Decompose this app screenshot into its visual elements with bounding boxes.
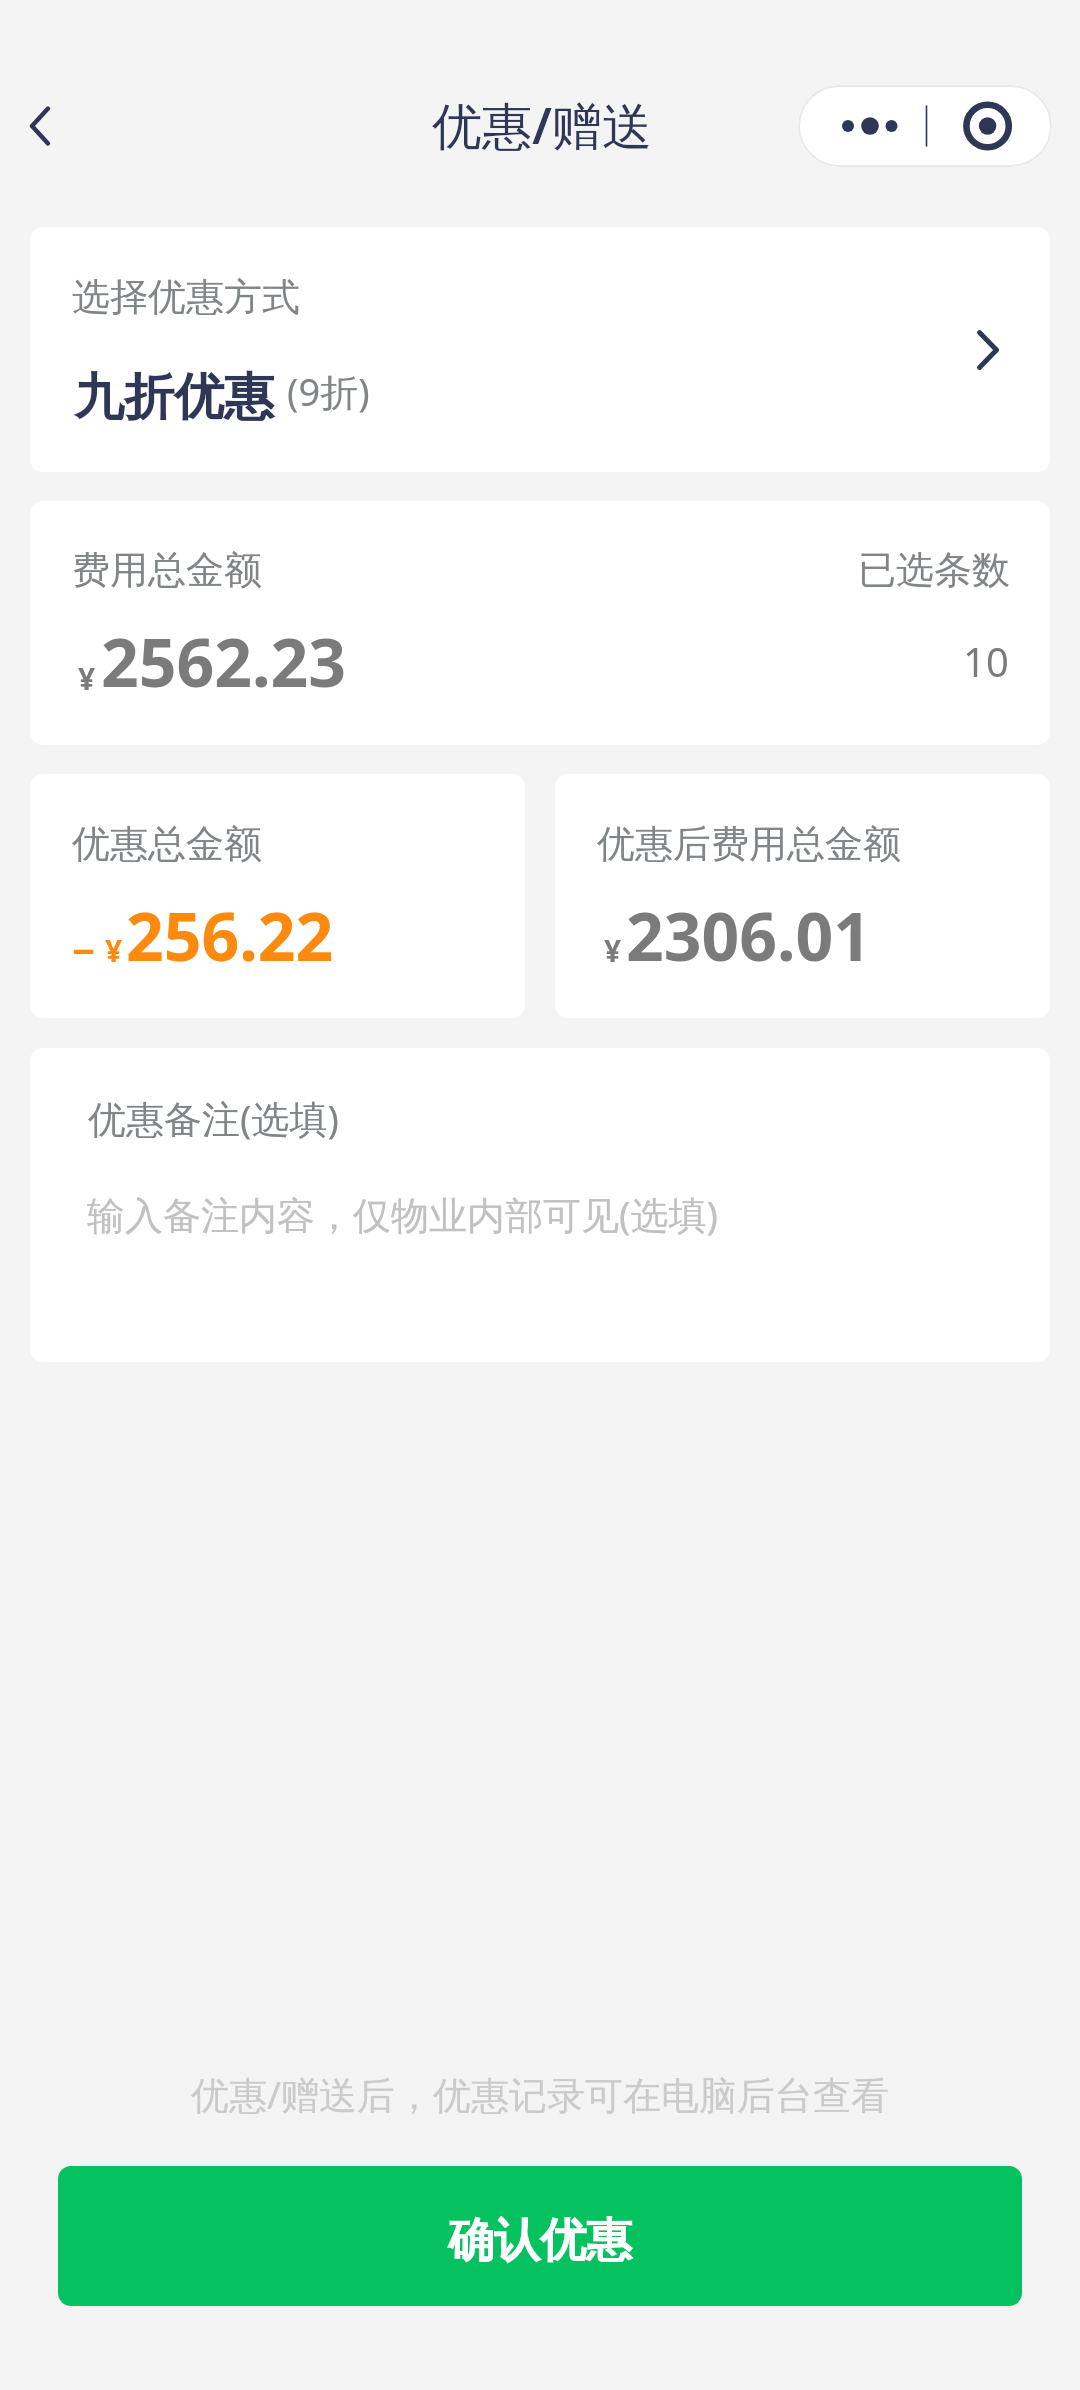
staticText: 256.22 bbox=[126, 890, 334, 980]
staticText: ¥ bbox=[78, 658, 96, 699]
staticText: − bbox=[72, 923, 96, 977]
staticText: 优惠/赠送后，优惠记录可在电脑后台查看 bbox=[0, 2068, 1080, 2120]
staticText: 已选条数 bbox=[858, 546, 1010, 594]
button[interactable]: 确认优惠 bbox=[58, 2166, 1022, 2306]
staticText: 九折优惠 bbox=[74, 366, 274, 429]
staticText: 2306.01 bbox=[626, 890, 872, 980]
staticText: 优惠备注(选填) bbox=[88, 1092, 339, 1144]
button[interactable]: More options and close mini program bbox=[798, 85, 1052, 167]
staticText: 优惠/赠送 bbox=[432, 91, 652, 159]
staticText: ¥ bbox=[105, 930, 123, 971]
staticText: 确认优惠 bbox=[448, 2212, 632, 2270]
button[interactable]: Back bbox=[0, 81, 85, 171]
staticText: 选择优惠方式 bbox=[72, 273, 300, 321]
staticText: 费用总金额 bbox=[72, 546, 262, 594]
staticText: 2562.23 bbox=[101, 616, 347, 706]
staticText: ¥ bbox=[604, 930, 622, 971]
staticText: (9折) bbox=[287, 365, 370, 417]
staticText: 输入备注内容，仅物业内部可见(选填) bbox=[87, 1188, 718, 1240]
button[interactable]: 优惠备注(选填) bbox=[30, 1048, 1050, 1362]
staticText: 优惠总金额 bbox=[72, 820, 262, 868]
button[interactable]: 选择优惠方式 bbox=[30, 227, 1050, 472]
staticText: 10 bbox=[963, 634, 1009, 688]
staticText: 优惠后费用总金额 bbox=[597, 820, 901, 868]
